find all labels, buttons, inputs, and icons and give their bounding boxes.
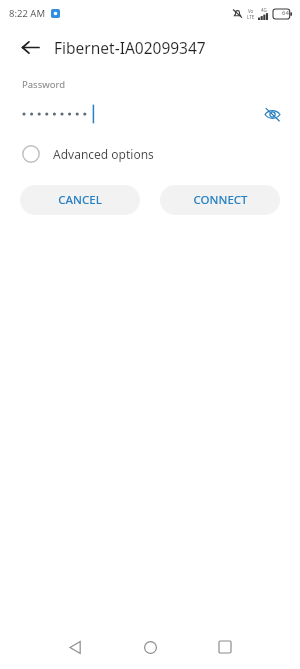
staticText: 8:22 AM (9, 7, 46, 20)
staticText: CANCEL (58, 192, 102, 208)
button[interactable]: Hide password (0, 101, 300, 127)
staticText: CONNECT (193, 192, 248, 208)
staticText: 64 (282, 9, 289, 17)
staticText: LTE (247, 14, 255, 20)
button[interactable]: Home (136, 633, 164, 661)
staticText: Password (22, 78, 65, 91)
staticText: Vo (248, 8, 254, 14)
button[interactable]: Back (12, 29, 48, 65)
button[interactable]: CONNECT (160, 185, 280, 215)
staticText: 4G (261, 7, 267, 13)
button[interactable]: CANCEL (20, 185, 140, 215)
button[interactable]: Advanced options (0, 139, 300, 169)
button[interactable]: Hide password (258, 101, 286, 127)
staticText: Fibernet-IA02099347 (54, 37, 206, 58)
staticText: Advanced options (53, 146, 154, 162)
button[interactable]: Back (61, 633, 89, 661)
button[interactable]: Recent apps (211, 633, 239, 661)
